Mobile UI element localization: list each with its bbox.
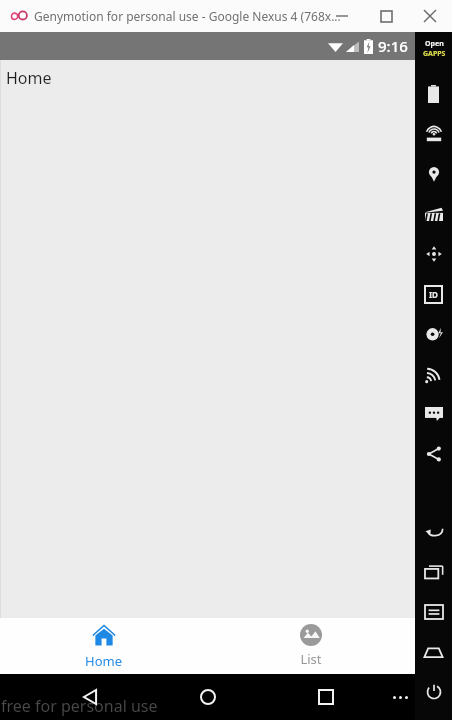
button[interactable]: List: [207, 618, 415, 674]
button[interactable]: Open GApps: [419, 38, 449, 60]
button[interactable]: Menu: [415, 592, 452, 632]
button[interactable]: Home: [149, 674, 267, 720]
button[interactable]: Recent apps: [267, 674, 385, 720]
button[interactable]: More options: [385, 677, 415, 717]
button[interactable]: Home: [415, 632, 452, 672]
staticText: Home: [85, 652, 122, 670]
button[interactable]: Virtual sensors: [415, 234, 452, 274]
button[interactable]: Minimize: [320, 1, 364, 31]
button[interactable]: GPS: [415, 114, 452, 154]
button[interactable]: Back: [30, 674, 149, 720]
button[interactable]: Disk IO: [415, 314, 452, 354]
button[interactable]: Recent apps: [415, 552, 452, 592]
staticText: Home: [6, 67, 52, 89]
staticText: ID: [429, 289, 438, 300]
button[interactable]: Camera: [415, 194, 452, 234]
button[interactable]: Battery: [415, 74, 452, 114]
button[interactable]: Share: [415, 434, 452, 474]
button[interactable]: Location: [415, 154, 452, 194]
staticText: GAPPS: [423, 49, 446, 59]
button[interactable]: Home: [0, 618, 207, 674]
button[interactable]: Back: [415, 512, 452, 552]
button[interactable]: Identifiers: [415, 274, 452, 314]
button[interactable]: Close: [408, 1, 452, 31]
staticText: Genymotion for personal use - Google Nex…: [34, 8, 341, 24]
staticText: Open: [425, 39, 444, 49]
staticText: List: [300, 650, 322, 668]
staticText: free for personal use: [1, 695, 158, 717]
button[interactable]: Power: [415, 672, 452, 712]
button[interactable]: Maximize: [364, 1, 408, 31]
button[interactable]: Network: [415, 354, 452, 394]
button[interactable]: SMS: [415, 394, 452, 434]
staticText: 9:16: [378, 36, 408, 56]
